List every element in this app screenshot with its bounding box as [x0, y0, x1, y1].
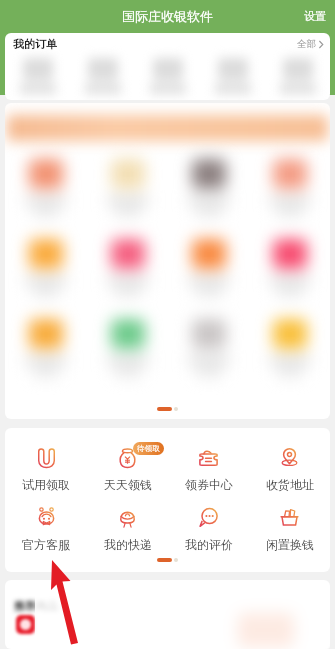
other: 收货地址 — [279, 447, 300, 468]
staticText: 我的快递 — [104, 537, 152, 552]
staticText: 全部 — [297, 38, 316, 50]
button[interactable]: 试用领取 — [5, 446, 87, 492]
other: 官方客服 — [36, 507, 57, 528]
staticText: 我的评价 — [185, 537, 233, 552]
button[interactable]: 闲置换钱 — [249, 506, 330, 552]
other: 天天领钱 — [117, 447, 138, 468]
other: 试用领取 — [36, 447, 57, 468]
other: 我的快递 — [117, 507, 138, 528]
staticText: 待领取 — [137, 444, 160, 453]
staticText: 设置 — [304, 9, 326, 23]
staticText: 官方客服 — [22, 537, 70, 552]
staticText: 国际庄收银软件 — [122, 8, 213, 24]
button[interactable]: 领券中心 — [168, 446, 249, 492]
button[interactable]: 全部 — [295, 35, 325, 53]
other: 领券中心 — [198, 447, 219, 468]
button[interactable]: 收货地址 — [249, 446, 330, 492]
staticText: 收货地址 — [266, 477, 314, 492]
staticText: 领券中心 — [185, 477, 233, 492]
staticText: 试用领取 — [22, 477, 70, 492]
button[interactable]: 官方客服 — [5, 506, 87, 552]
button[interactable]: 设置 — [295, 3, 335, 29]
button[interactable]: 我的评价 — [168, 506, 249, 552]
staticText: 天天领钱 — [104, 477, 152, 492]
staticText: 推荐商品 · — [14, 598, 64, 613]
other: 我的评价 — [198, 507, 219, 528]
staticText: 我的订单 — [13, 37, 57, 51]
button[interactable]: 天天领钱 — [87, 446, 168, 492]
staticText: 闲置换钱 — [266, 537, 314, 552]
button[interactable]: 我的快递 — [87, 506, 168, 552]
other: 闲置换钱 — [279, 507, 300, 528]
